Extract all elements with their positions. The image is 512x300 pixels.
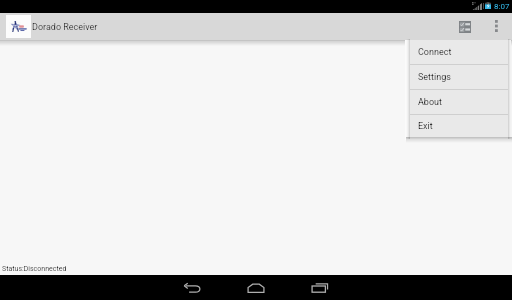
button[interactable]: Home <box>224 275 288 300</box>
staticText: Status:Disconnected <box>2 265 67 273</box>
staticText: Settings <box>418 72 451 83</box>
staticText: 8:07 <box>494 2 510 11</box>
button[interactable]: Connect <box>410 40 508 64</box>
staticText: About <box>418 97 442 108</box>
button[interactable]: About <box>410 90 508 114</box>
staticText: Exit <box>418 121 433 132</box>
button[interactable]: List view <box>453 15 477 39</box>
button[interactable]: Back <box>160 275 224 300</box>
staticText: Connect <box>418 47 452 58</box>
button[interactable]: Recents <box>288 275 352 300</box>
button[interactable]: Settings <box>410 65 508 89</box>
button[interactable]: More options <box>485 15 507 37</box>
button[interactable]: Exit <box>410 115 508 137</box>
staticText: Dorado Receiver <box>32 22 98 33</box>
